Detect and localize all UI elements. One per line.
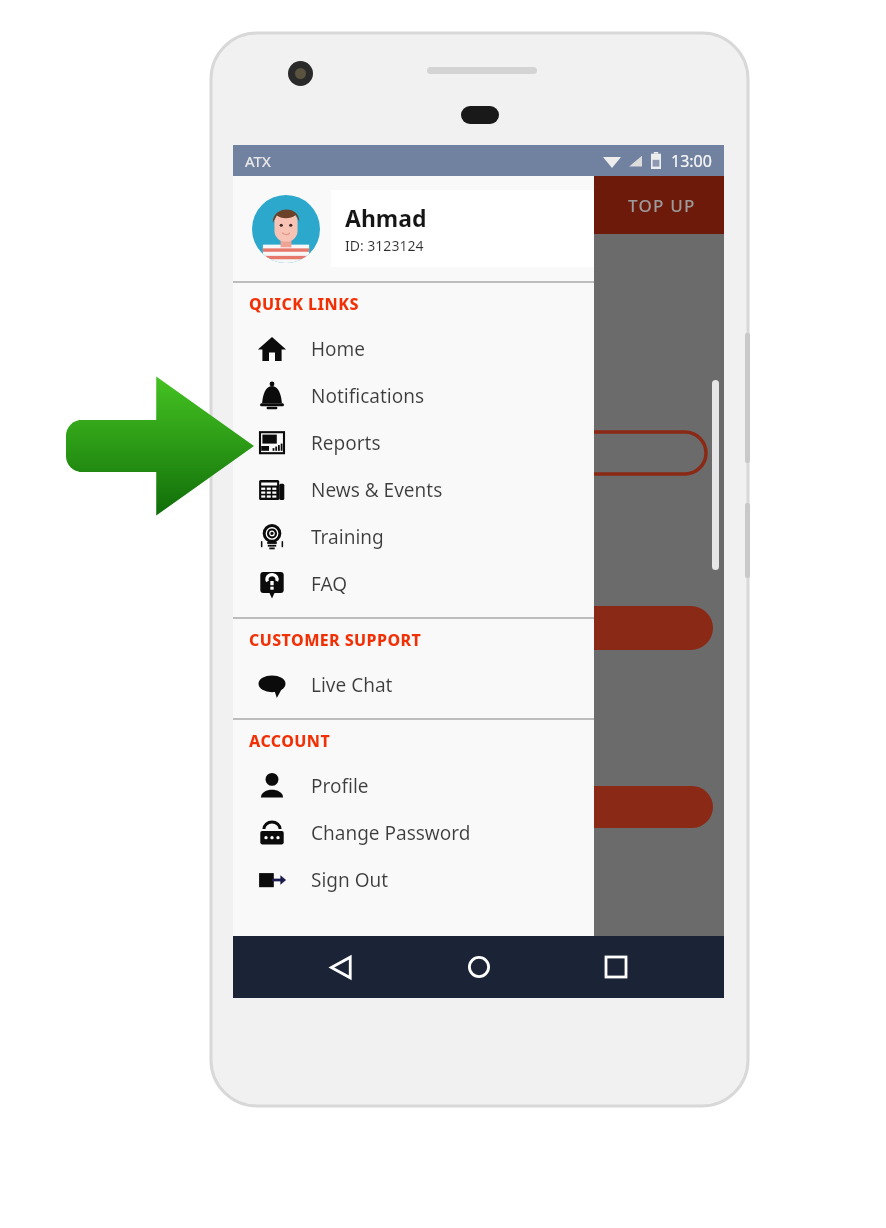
staticText: TOP UP [628,194,696,217]
button[interactable]: Ahmad [233,176,594,281]
button[interactable]: Sign Out [233,856,594,903]
button[interactable]: News & Events [233,466,594,513]
staticText: Ahmad [345,202,427,233]
button[interactable]: Back [312,938,370,996]
button[interactable]: Home [233,325,594,372]
button[interactable]: Recents [587,938,645,996]
staticText: News & Events [311,477,443,503]
staticText: Training [311,524,384,550]
staticText: Change Password [311,820,471,846]
staticText: Notifications [311,383,425,409]
button[interactable]: Reports [233,419,594,466]
staticText: QUICK LINKS [249,293,359,315]
staticText: ID: 3123124 [345,236,424,255]
staticText: 13:00 [671,150,712,172]
staticText: Live Chat [311,672,393,698]
staticText: Home [311,336,366,362]
button[interactable]: FAQ [233,560,594,607]
staticText: CUSTOMER SUPPORT [249,629,422,651]
staticText: ATX [245,151,271,171]
staticText: Profile [311,773,369,799]
button[interactable]: Training [233,513,594,560]
button[interactable]: Profile [233,762,594,809]
staticText: Reports [311,430,381,456]
button[interactable]: Live Chat [233,661,594,708]
button[interactable]: Notifications [233,372,594,419]
staticText: FAQ [311,571,348,597]
button[interactable]: Change Password [233,809,594,856]
button[interactable]: Home [450,938,508,996]
staticText: Sign Out [311,867,389,893]
staticText: ACCOUNT [249,730,331,752]
staticText: F / PICK-UP [469,618,565,638]
